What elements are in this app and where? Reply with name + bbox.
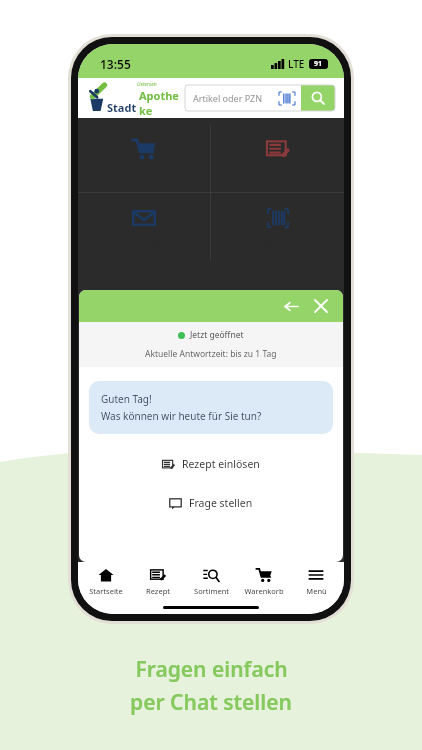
- staticText: Was können wir heute für Sie tun?: [101, 409, 262, 423]
- staticText: Fragen einfach: [135, 655, 288, 684]
- staticText: Guten Tag!: [101, 392, 152, 406]
- other: Suchen: [301, 85, 335, 111]
- staticText: Warenkorb: [244, 586, 284, 596]
- staticText: Jetzt geöffnet: [190, 329, 244, 341]
- button[interactable]: Warenkorb: [239, 567, 289, 596]
- staticText: Apotheke: [139, 88, 179, 115]
- button[interactable]: Online reservieren: [78, 124, 210, 192]
- button[interactable]: Barcode-Scanner: [211, 193, 344, 261]
- button[interactable]: Artikel oder PZN: [185, 85, 335, 111]
- button[interactable]: Rezept einlösen: [211, 124, 344, 192]
- staticText: Startseite: [89, 586, 123, 596]
- staticText: Rezept einlösen: [182, 457, 260, 471]
- button[interactable]: Startseite: [81, 567, 131, 596]
- button[interactable]: Frage stellen: [89, 488, 333, 518]
- staticText: per Chat stellen: [130, 688, 292, 717]
- button[interactable]: Rezept: [133, 567, 183, 596]
- staticText: Artikel oder PZN: [193, 92, 263, 104]
- button[interactable]: Schließen: [309, 294, 333, 318]
- button[interactable]: Zurück: [279, 294, 303, 318]
- staticText: Sortiment: [194, 586, 229, 596]
- staticText: iPhone and its design are trademarks of …: [123, 352, 132, 516]
- button[interactable]: Kontakt: [78, 193, 210, 261]
- staticText: Menü: [306, 586, 327, 596]
- staticText: 91: [314, 59, 323, 69]
- staticText: Stadt: [107, 100, 137, 115]
- staticText: Aktuelle Antwortzeit: bis zu 1 Tag: [145, 348, 277, 360]
- staticText: Rezept: [146, 586, 170, 596]
- staticText: Uetersen: [137, 81, 157, 88]
- staticText: Frage stellen: [189, 496, 253, 510]
- button[interactable]: Menü: [291, 567, 341, 596]
- staticText: LTE: [288, 57, 305, 71]
- button[interactable]: Rezept einlösen: [89, 449, 333, 479]
- staticText: 13:55: [100, 56, 131, 72]
- button[interactable]: Sortiment: [186, 567, 236, 596]
